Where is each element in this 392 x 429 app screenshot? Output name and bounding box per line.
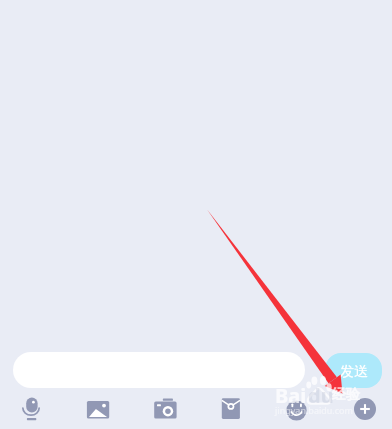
button[interactable]: Camera <box>154 397 177 420</box>
button[interactable]: Red packet <box>221 397 241 421</box>
staticText: du <box>308 382 334 409</box>
button[interactable]: Emoji <box>286 398 308 420</box>
button[interactable] <box>13 352 305 388</box>
staticText: Bai <box>275 382 307 409</box>
staticText: 发送 <box>340 363 368 381</box>
staticText: 经验 <box>332 386 360 404</box>
button[interactable]: More options <box>354 398 376 420</box>
button[interactable]: Photo <box>86 399 110 420</box>
staticText: jingyan.baidu.com <box>275 404 353 416</box>
button[interactable]: 发送 <box>325 353 382 388</box>
button[interactable]: Voice message <box>21 395 41 422</box>
